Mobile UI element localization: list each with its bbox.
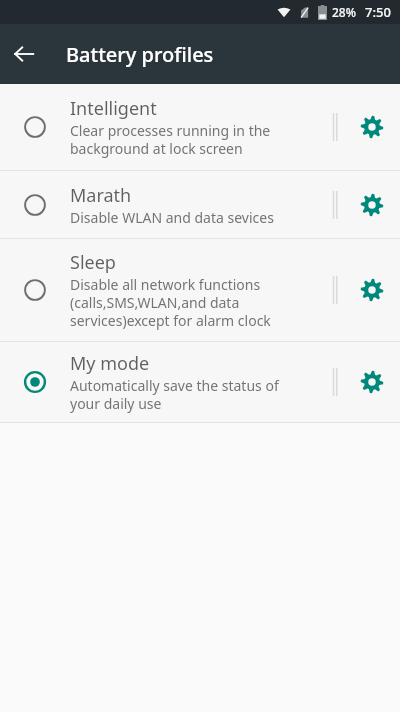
button[interactable]: My mode [0,342,400,422]
staticText: My mode [70,351,150,376]
button[interactable]: Marath [0,171,400,238]
staticText: 7:50 [365,3,391,21]
button[interactable]: Settings for Sleep [344,239,400,341]
staticText: Disable WLAN and data sevices [70,208,274,227]
staticText: Disable all network functions (calls,SMS… [70,275,271,330]
staticText: Clear processes running in the backgroun… [70,121,271,158]
staticText: Automatically save the status of your da… [70,376,279,413]
staticText: Sleep [70,250,116,275]
button[interactable]: Settings for My mode [344,342,400,422]
staticText: Intelligent [70,96,157,121]
staticText: Marath [70,183,132,208]
staticText: 28% [332,4,356,20]
button[interactable]: Sleep [0,239,400,341]
button[interactable]: Back [0,30,48,78]
button[interactable]: Intelligent [0,84,400,170]
button[interactable]: Settings for Intelligent [344,84,400,170]
button[interactable]: Settings for Marath [344,171,400,238]
staticText: Battery profiles [66,41,214,68]
